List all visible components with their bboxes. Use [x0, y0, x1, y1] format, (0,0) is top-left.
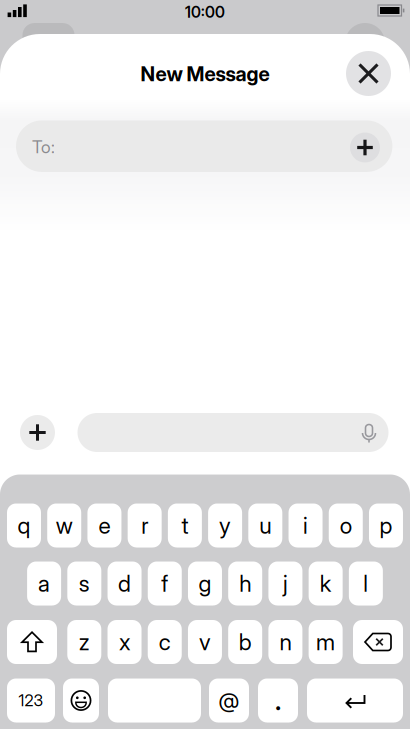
button[interactable]: d [107, 561, 141, 605]
button[interactable]: a [27, 561, 61, 605]
button[interactable] [353, 620, 403, 664]
button[interactable]: @ [209, 678, 249, 722]
button[interactable]: j [268, 561, 302, 605]
button[interactable]: q [7, 503, 41, 547]
button[interactable]: x [107, 620, 141, 664]
staticText: s [79, 570, 90, 597]
staticText: u [259, 512, 271, 539]
button[interactable] [307, 678, 403, 722]
staticText: e [98, 512, 110, 539]
staticText: q [17, 512, 30, 539]
button[interactable]: f [148, 561, 182, 605]
staticText: m [316, 629, 335, 655]
staticText: w [56, 512, 73, 539]
button[interactable]: l [349, 561, 383, 605]
staticText: n [279, 629, 291, 655]
staticText: t [181, 512, 188, 539]
staticText: b [239, 629, 252, 655]
button[interactable] [63, 678, 99, 722]
staticText: 10:00 [185, 3, 225, 21]
staticText: @ [218, 688, 239, 713]
button[interactable]: m [309, 620, 343, 664]
button[interactable]: . [258, 678, 298, 722]
button[interactable]: b [228, 620, 262, 664]
staticText: j [283, 570, 288, 597]
button[interactable]: To: [16, 120, 392, 172]
staticText: k [320, 570, 332, 597]
staticText: v [199, 629, 211, 655]
button[interactable] [346, 51, 391, 96]
staticText: New Message [140, 62, 269, 86]
staticText: d [118, 570, 131, 597]
staticText: r [141, 512, 148, 539]
button[interactable]: c [148, 620, 182, 664]
staticText: x [119, 629, 130, 655]
staticText: i [303, 512, 308, 539]
button[interactable]: y [208, 503, 242, 547]
staticText: . [275, 685, 281, 716]
button[interactable]: e [87, 503, 121, 547]
button[interactable]: v [188, 620, 222, 664]
button[interactable] [350, 132, 380, 162]
button[interactable]: g [188, 561, 222, 605]
staticText: c [159, 629, 171, 655]
staticText: To: [32, 137, 55, 157]
button[interactable]: 123 [7, 678, 55, 722]
button[interactable] [108, 678, 201, 722]
button[interactable]: h [228, 561, 262, 605]
button[interactable]: n [268, 620, 302, 664]
button[interactable]: p [369, 503, 403, 547]
staticText: z [79, 629, 90, 655]
button[interactable] [7, 620, 57, 664]
button[interactable]: i [288, 503, 322, 547]
button[interactable]: t [168, 503, 202, 547]
staticText: o [340, 512, 352, 539]
staticText: g [198, 570, 211, 597]
button[interactable]: r [128, 503, 162, 547]
button[interactable] [77, 413, 388, 452]
staticText: p [379, 512, 392, 539]
staticText: f [161, 570, 168, 597]
staticText: y [219, 512, 231, 539]
button[interactable]: w [47, 503, 81, 547]
staticText: 123 [18, 691, 43, 710]
staticText: h [239, 570, 251, 597]
button[interactable]: u [248, 503, 282, 547]
button[interactable]: z [67, 620, 101, 664]
button[interactable]: o [329, 503, 363, 547]
staticText: l [363, 570, 368, 597]
staticText: a [38, 570, 50, 597]
button[interactable]: k [309, 561, 343, 605]
button[interactable] [20, 415, 55, 450]
button[interactable]: s [67, 561, 101, 605]
